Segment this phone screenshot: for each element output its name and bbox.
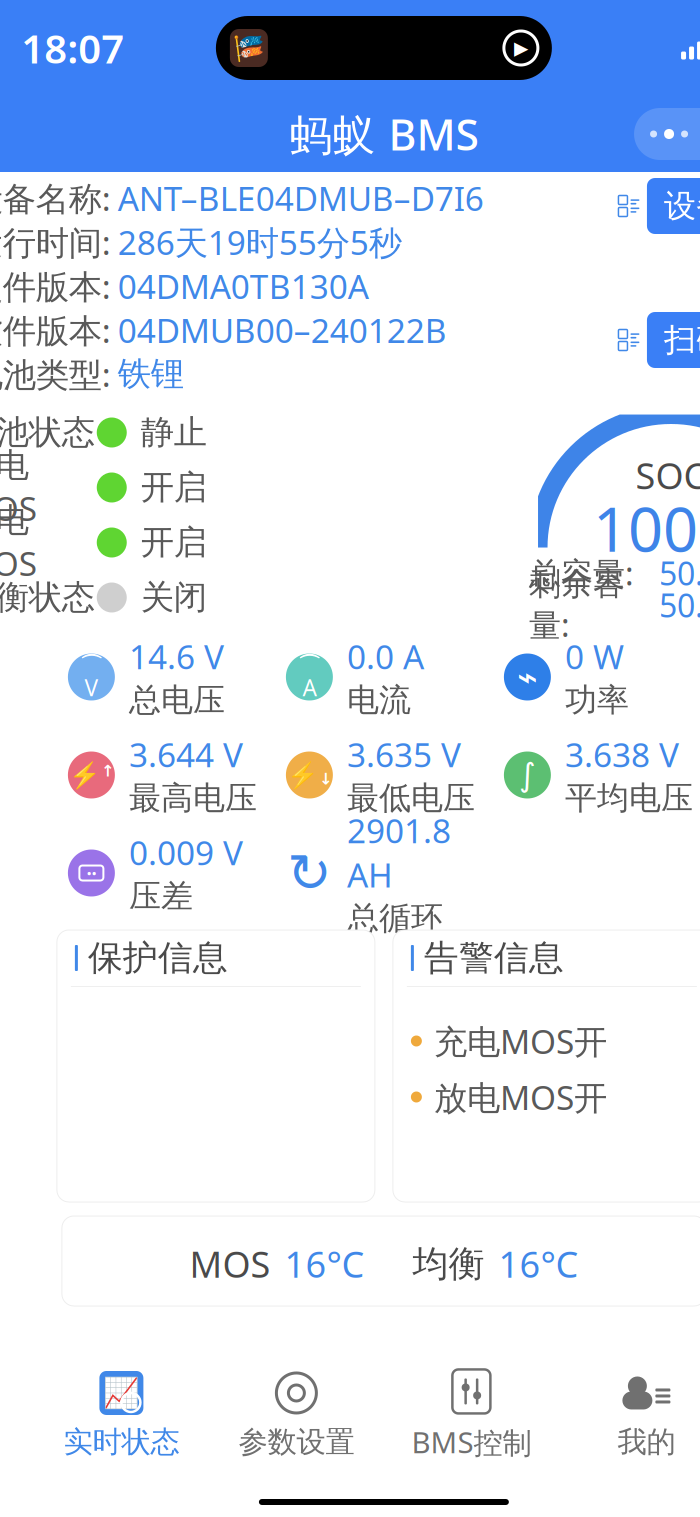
staticText: 开启 bbox=[141, 467, 207, 508]
staticText: 平均电压 bbox=[565, 778, 693, 818]
button[interactable]: 我的 bbox=[559, 1365, 700, 1465]
staticText: 静止 bbox=[141, 412, 207, 453]
staticText: ⌁ bbox=[517, 657, 538, 697]
staticText: 0.0 A bbox=[347, 634, 424, 678]
staticText: ⌒ bbox=[298, 651, 321, 679]
staticText: ⚡ bbox=[287, 760, 319, 789]
staticText: ↓ bbox=[319, 770, 332, 788]
staticText: 最高电压 bbox=[129, 778, 257, 818]
staticText: 3.635 V bbox=[347, 732, 461, 776]
staticText: 充电MOS开 bbox=[434, 1019, 607, 1063]
staticText: 实时状态 bbox=[63, 1424, 179, 1460]
staticText: 04DMUB00–240122B bbox=[118, 308, 447, 352]
staticText: 放电MOS bbox=[0, 500, 37, 585]
staticText: 设备列表 bbox=[664, 186, 700, 226]
button[interactable]: 📈 bbox=[34, 1365, 209, 1465]
staticText: 硬件版本: bbox=[0, 264, 111, 308]
staticText: 电池状态 bbox=[0, 412, 95, 453]
staticText: 充电MOS bbox=[0, 445, 37, 530]
staticText: 总容量: bbox=[529, 552, 634, 594]
button[interactable]: 扫码连接 bbox=[647, 312, 700, 368]
staticText: 保护信息 bbox=[88, 937, 228, 979]
staticText: 0.009 V bbox=[129, 830, 243, 874]
staticText: ▶ bbox=[514, 37, 528, 59]
staticText: 04DMA0TB130A bbox=[118, 264, 369, 308]
staticText: 蚂蚁 BMS bbox=[289, 106, 478, 162]
staticText: 100% bbox=[593, 487, 700, 569]
staticText: 0 W bbox=[565, 634, 624, 678]
staticText: ⚡ bbox=[69, 760, 101, 789]
staticText: 50.0 AH bbox=[659, 584, 700, 626]
staticText: ↻ bbox=[287, 843, 332, 903]
staticText: 最低电压 bbox=[347, 778, 475, 818]
staticText: ANT–BLE04DMUB–D7I6 bbox=[118, 176, 484, 220]
staticText: 📈 bbox=[103, 1376, 140, 1410]
staticText: V bbox=[84, 672, 98, 702]
staticText: 均衡 bbox=[412, 1242, 484, 1286]
staticText: SOC bbox=[635, 451, 700, 499]
button[interactable]: 设备列表 bbox=[647, 178, 700, 234]
staticText: 286天19时55分5秒 bbox=[118, 220, 402, 264]
staticText: 参数设置 bbox=[238, 1424, 354, 1460]
button[interactable]: 更多 bbox=[634, 108, 700, 160]
staticText: 开启 bbox=[141, 522, 207, 563]
staticText: 我的 bbox=[617, 1424, 675, 1460]
staticText: 总循环 bbox=[347, 899, 443, 938]
staticText: 关闭 bbox=[141, 577, 207, 618]
staticText: 设备名称: bbox=[0, 176, 111, 220]
staticText: ·· bbox=[86, 861, 96, 885]
staticText: 3.644 V bbox=[129, 732, 243, 776]
staticText: A bbox=[302, 672, 316, 702]
staticText: ↑ bbox=[101, 762, 114, 780]
staticText: 均衡状态 bbox=[0, 577, 95, 618]
staticText: 2901.8 AH bbox=[347, 808, 451, 897]
staticText: 16°C bbox=[498, 1240, 578, 1288]
staticText: 🎏 bbox=[233, 33, 265, 62]
staticText: 16°C bbox=[284, 1240, 364, 1288]
staticText: 50.0 AH bbox=[659, 552, 700, 594]
button[interactable]: 参数设置 bbox=[209, 1365, 384, 1465]
staticText: 放电MOS开 bbox=[434, 1075, 607, 1119]
button[interactable]: BMS控制 bbox=[384, 1365, 559, 1465]
staticText: 软件版本: bbox=[0, 308, 111, 352]
staticText: 18:07 bbox=[21, 21, 124, 74]
staticText: 告警信息 bbox=[424, 937, 564, 979]
staticText: 运行时间: bbox=[0, 220, 111, 264]
staticText: ∫ bbox=[519, 757, 536, 793]
staticText: 总电压 bbox=[129, 680, 225, 720]
staticText: ⌒ bbox=[80, 651, 103, 679]
staticText: 剩余容量: bbox=[529, 564, 625, 646]
staticText: 铁锂 bbox=[118, 353, 184, 394]
staticText: 电流 bbox=[347, 680, 411, 720]
staticText: 电池类型: bbox=[0, 352, 111, 396]
staticText: 功率 bbox=[565, 680, 629, 720]
staticText: MOS bbox=[189, 1240, 270, 1288]
staticText: BMS控制 bbox=[411, 1422, 531, 1461]
staticText: 3.638 V bbox=[565, 732, 679, 776]
staticText: 14.6 V bbox=[129, 634, 224, 678]
staticText: 压差 bbox=[129, 876, 193, 916]
staticText: 扫码连接 bbox=[664, 320, 700, 360]
